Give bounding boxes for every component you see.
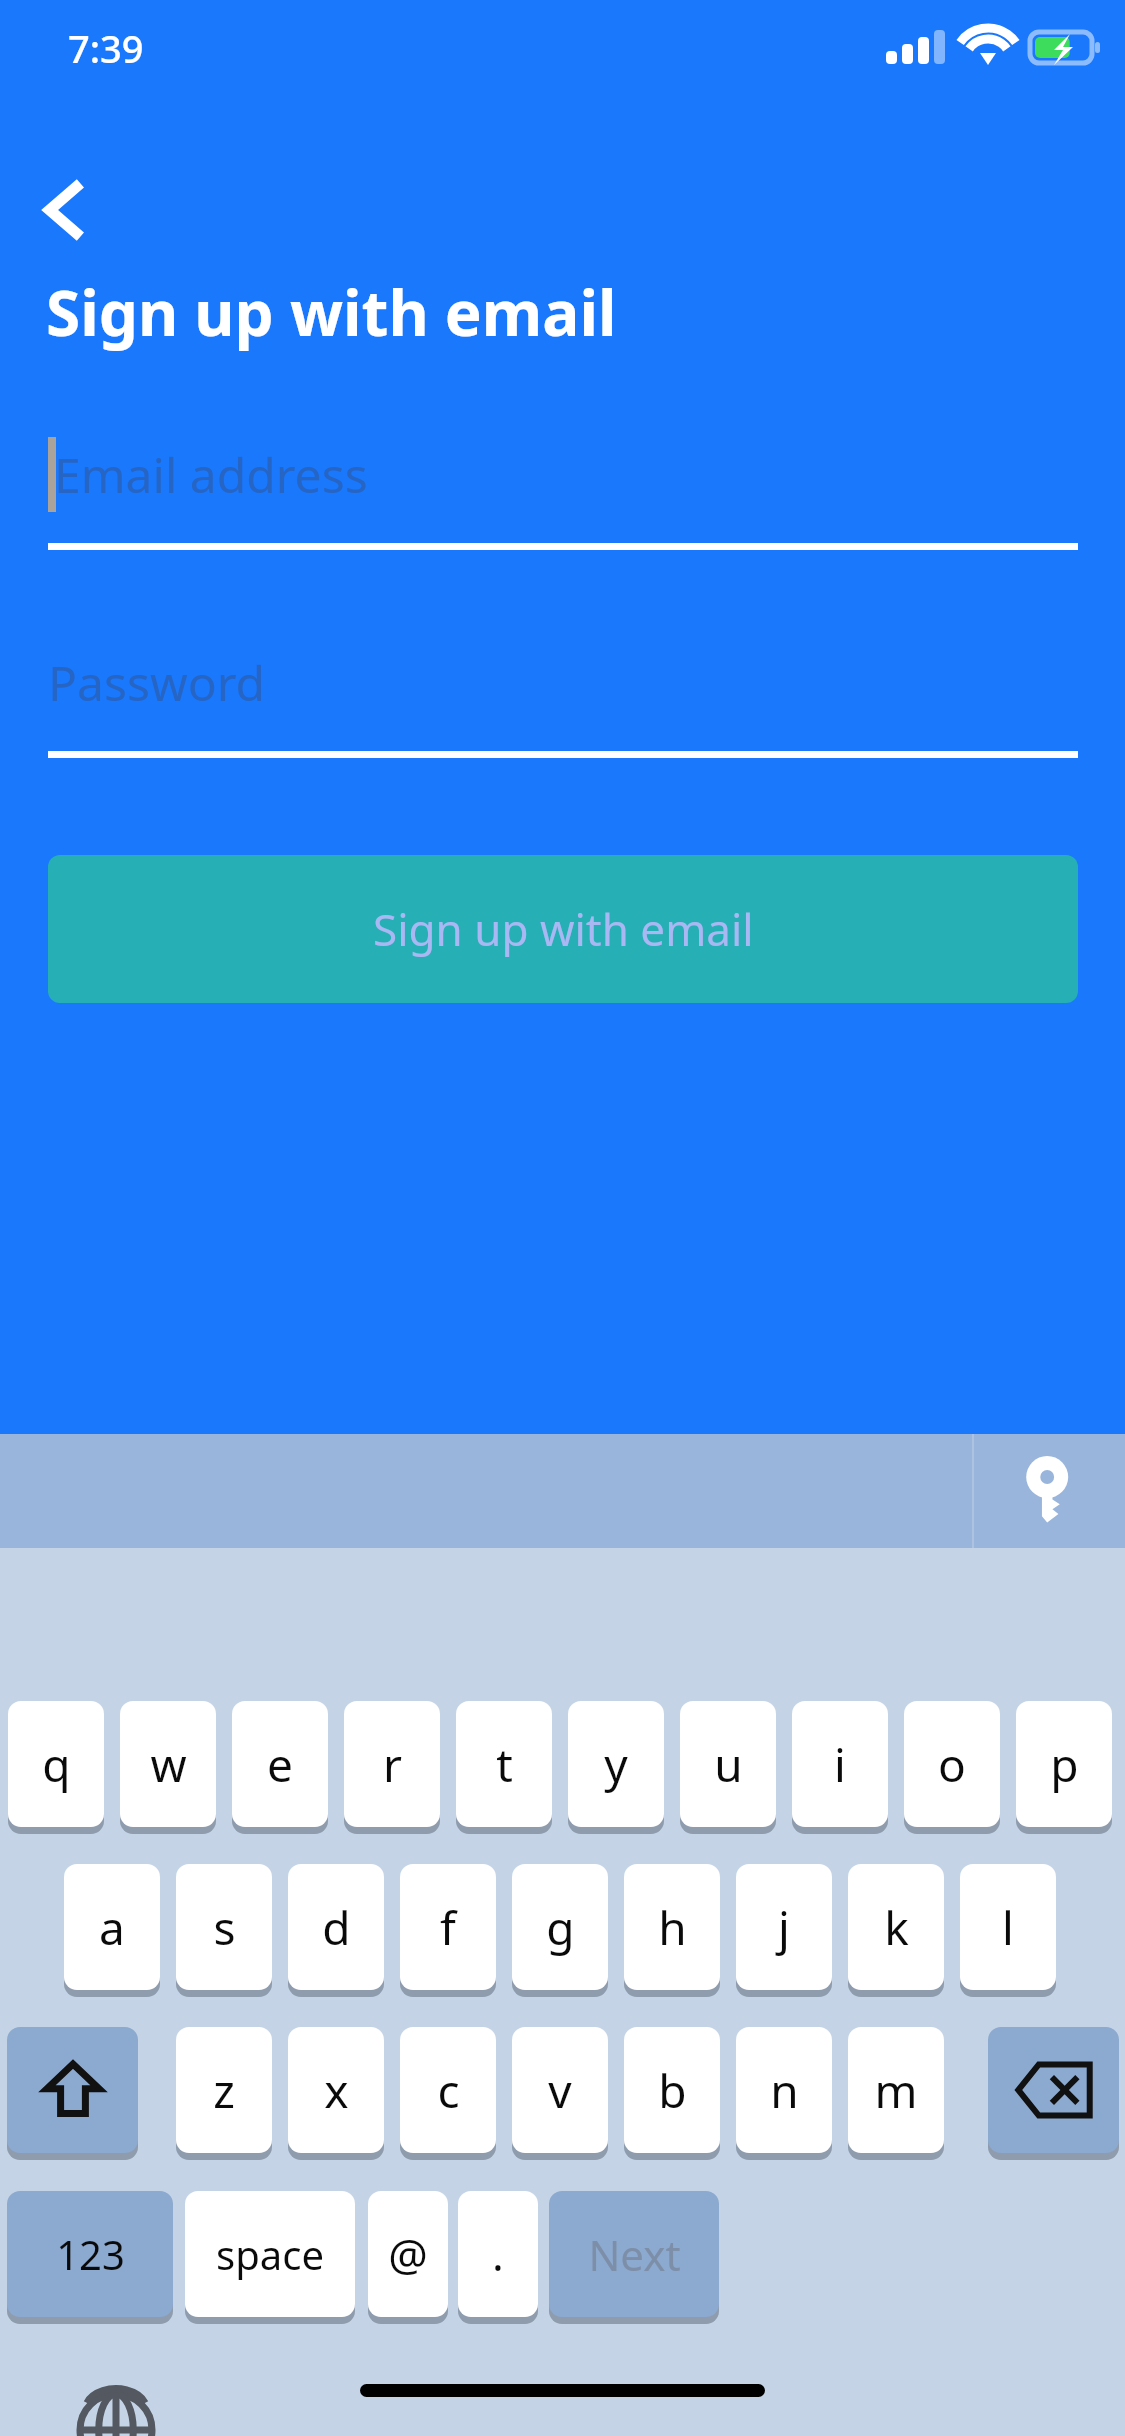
staticText: r (383, 1733, 402, 1796)
button[interactable]: o (904, 1701, 1000, 1827)
staticText: y (604, 1733, 628, 1796)
staticText: v (548, 2059, 572, 2122)
staticText: m (874, 2059, 918, 2122)
staticText: 123 (56, 2227, 125, 2281)
staticText: o (938, 1733, 966, 1796)
staticText: Sign up with email (46, 270, 617, 354)
button[interactable]: c (400, 2027, 496, 2153)
staticText: q (42, 1733, 71, 1796)
button[interactable]: Backspace (988, 2027, 1119, 2153)
button[interactable]: u (680, 1701, 776, 1827)
staticText: space (216, 2227, 324, 2281)
staticText: @ (388, 2224, 428, 2284)
staticText: j (778, 1896, 790, 1959)
button[interactable]: i (792, 1701, 888, 1827)
button[interactable]: z (176, 2027, 272, 2153)
staticText: Next (588, 2226, 681, 2283)
button[interactable]: @ (368, 2191, 448, 2317)
button[interactable]: h (624, 1864, 720, 1990)
staticText: c (437, 2059, 460, 2122)
staticText: h (658, 1896, 687, 1959)
staticText: t (496, 1733, 513, 1796)
button[interactable]: 123 (7, 2191, 173, 2317)
staticText: u (714, 1733, 743, 1796)
button[interactable]: y (568, 1701, 664, 1827)
button[interactable]: l (960, 1864, 1056, 1990)
button[interactable]: s (176, 1864, 272, 1990)
staticText: s (213, 1896, 236, 1959)
staticText: b (658, 2059, 687, 2122)
staticText: k (884, 1896, 909, 1959)
staticText: l (1002, 1896, 1014, 1959)
button[interactable]: n (736, 2027, 832, 2153)
staticText: e (267, 1733, 293, 1796)
staticText: x (324, 2059, 349, 2122)
button[interactable]: Passwords (974, 1434, 1125, 1548)
staticText: w (150, 1733, 187, 1796)
staticText: Sign up with email (373, 899, 754, 959)
button[interactable]: q (8, 1701, 104, 1827)
button[interactable]: Shift (7, 2027, 138, 2153)
button[interactable]: space (185, 2191, 355, 2317)
button[interactable]: w (120, 1701, 216, 1827)
button[interactable]: j (736, 1864, 832, 1990)
staticText: n (770, 2059, 799, 2122)
button[interactable]: d (288, 1864, 384, 1990)
button[interactable]: b (624, 2027, 720, 2153)
button[interactable]: k (848, 1864, 944, 1990)
button[interactable]: Change keyboard (60, 2374, 172, 2436)
button[interactable]: p (1016, 1701, 1112, 1827)
staticText: . (492, 2224, 504, 2284)
button[interactable]: x (288, 2027, 384, 2153)
staticText: Password (48, 650, 266, 715)
staticText: g (546, 1896, 575, 1959)
staticText: z (213, 2059, 235, 2122)
button[interactable]: Back (10, 155, 120, 265)
staticText: d (322, 1896, 351, 1959)
button[interactable]: t (456, 1701, 552, 1827)
staticText: p (1050, 1733, 1079, 1796)
staticText: i (834, 1733, 846, 1796)
button[interactable]: . (458, 2191, 538, 2317)
button[interactable]: g (512, 1864, 608, 1990)
button[interactable]: Sign up with email (48, 855, 1078, 1003)
staticText: f (440, 1896, 456, 1959)
button[interactable]: a (64, 1864, 160, 1990)
button[interactable]: v (512, 2027, 608, 2153)
button[interactable]: Email address (48, 420, 1078, 550)
staticText: Email address (54, 442, 368, 507)
button[interactable]: Next (549, 2191, 719, 2317)
button[interactable]: m (848, 2027, 944, 2153)
staticText: 7:39 (68, 22, 144, 74)
button[interactable]: e (232, 1701, 328, 1827)
button[interactable]: Password (48, 628, 1078, 758)
button[interactable]: f (400, 1864, 496, 1990)
staticText: a (99, 1896, 125, 1959)
button[interactable]: r (344, 1701, 440, 1827)
